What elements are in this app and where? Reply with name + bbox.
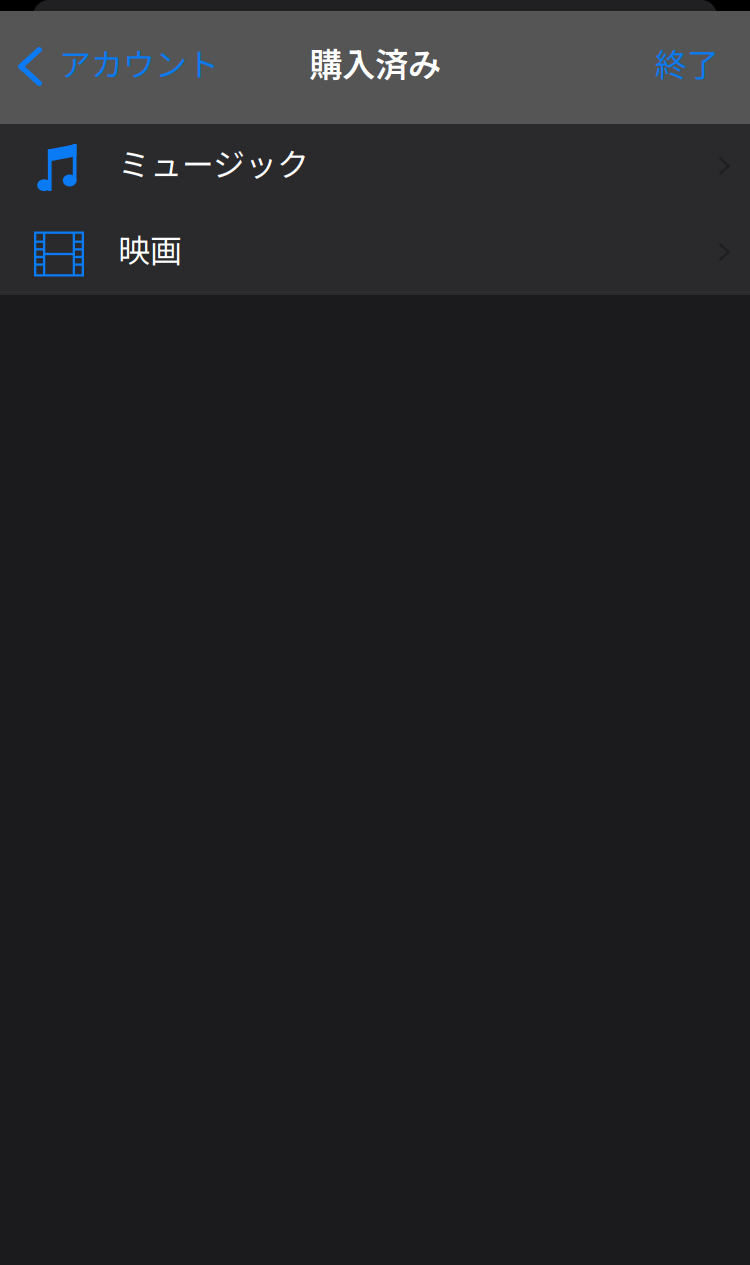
staticText: 映画 [118,225,182,272]
staticText: 購入済み [309,38,441,87]
button[interactable]: 映画 [0,208,750,291]
staticText: ミュージック [118,139,309,186]
staticText: アカウント [59,39,219,86]
button[interactable]: 終了 [631,11,750,114]
staticText: 終了 [655,39,719,86]
button[interactable]: アカウント [0,11,233,114]
button[interactable]: ミュージック [0,124,750,208]
